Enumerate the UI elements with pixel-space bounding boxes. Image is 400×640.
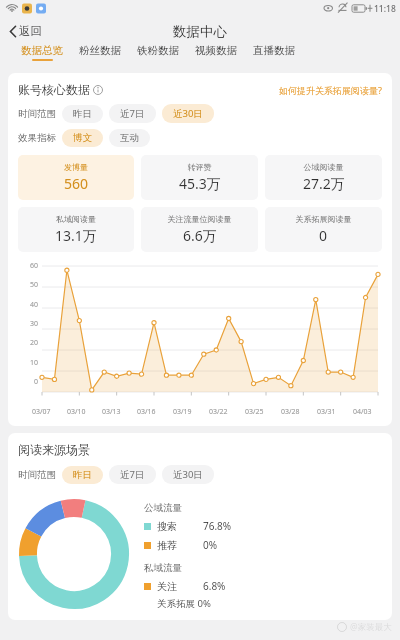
- button[interactable]: 近30日: [162, 104, 214, 123]
- staticText: 03/16: [137, 407, 156, 417]
- button[interactable]: 关系拓展阅读量: [265, 207, 382, 252]
- button[interactable]: 粉丝数据: [74, 44, 126, 59]
- staticText: 近30日: [173, 107, 203, 120]
- staticText: 27.2万: [303, 174, 345, 193]
- staticText: 私域流量: [144, 562, 182, 574]
- staticText: 视频数据: [195, 44, 237, 57]
- button[interactable]: 说明: [93, 85, 103, 95]
- button[interactable]: 博文: [62, 129, 103, 147]
- staticText: 30: [30, 319, 39, 329]
- staticText: 数据中心: [173, 23, 227, 40]
- staticText: 近7日: [120, 468, 145, 481]
- button[interactable]: 公域阅读量: [265, 155, 382, 200]
- staticText: 直播数据: [253, 44, 295, 57]
- staticText: 昨日: [73, 108, 92, 120]
- staticText: 关系拓展 0%: [157, 597, 211, 610]
- staticText: 0%: [203, 538, 218, 552]
- button[interactable]: 互动: [109, 129, 150, 147]
- staticText: 03/19: [173, 407, 192, 417]
- button[interactable]: 关注流量位阅读量: [141, 207, 258, 252]
- staticText: 10: [30, 358, 39, 368]
- staticText: 03/13: [102, 407, 121, 417]
- staticText: 时间范围: [18, 469, 56, 481]
- button[interactable]: 转评赞: [141, 155, 258, 200]
- staticText: @家装最大: [350, 621, 392, 633]
- staticText: 13.1万: [55, 226, 97, 245]
- staticText: 公域流量: [144, 502, 182, 514]
- button[interactable]: 近30日: [162, 465, 214, 484]
- staticText: 转评赞: [143, 162, 256, 172]
- button[interactable]: 近7日: [109, 465, 156, 484]
- staticText: 昨日: [73, 469, 92, 481]
- staticText: 互动: [120, 132, 139, 144]
- button[interactable]: 数据总览: [16, 44, 68, 61]
- staticText: 返回: [19, 24, 42, 38]
- button[interactable]: 昨日: [62, 105, 103, 123]
- staticText: 粉丝数据: [79, 44, 121, 57]
- staticText: 03/22: [209, 407, 228, 417]
- staticText: 03/31: [317, 407, 336, 417]
- staticText: 03/10: [67, 407, 86, 417]
- staticText: 关注流量位阅读量: [143, 214, 256, 224]
- staticText: 560: [64, 174, 89, 193]
- staticText: 私域阅读量: [20, 214, 132, 224]
- staticText: 公域阅读量: [267, 162, 380, 172]
- staticText: 03/28: [281, 407, 300, 417]
- button[interactable]: 直播数据: [248, 44, 300, 59]
- staticText: 近7日: [120, 107, 145, 120]
- staticText: 效果指标: [18, 132, 56, 144]
- staticText: 关系拓展阅读量: [267, 214, 380, 224]
- staticText: 铁粉数据: [137, 44, 179, 57]
- staticText: 11:18: [374, 3, 396, 15]
- staticText: 时间范围: [18, 108, 56, 120]
- button[interactable]: 如何提升关系拓展阅读量?: [279, 84, 382, 96]
- staticText: 博文: [73, 132, 92, 144]
- staticText: 近30日: [173, 468, 203, 481]
- staticText: 40: [30, 300, 39, 310]
- staticText: 04/03: [353, 407, 372, 417]
- button[interactable]: 私域阅读量: [18, 207, 134, 252]
- staticText: 6.6万: [183, 226, 217, 245]
- staticText: 发博量: [20, 162, 132, 172]
- staticText: 0: [319, 226, 328, 245]
- staticText: 关注: [157, 580, 177, 593]
- staticText: 20: [30, 338, 39, 348]
- staticText: 76.8%: [203, 519, 232, 533]
- staticText: 50: [30, 280, 39, 290]
- staticText: 6.8%: [203, 579, 226, 593]
- button[interactable]: 近7日: [109, 104, 156, 123]
- staticText: 推荐: [157, 539, 177, 552]
- button[interactable]: 视频数据: [190, 44, 242, 59]
- staticText: 搜索: [157, 520, 177, 533]
- button[interactable]: 昨日: [62, 466, 103, 484]
- staticText: 数据总览: [21, 44, 63, 57]
- staticText: 0: [34, 377, 39, 387]
- staticText: 60: [30, 261, 39, 271]
- staticText: 03/07: [32, 407, 51, 417]
- button[interactable]: 发博量: [18, 155, 134, 200]
- staticText: 45.3万: [179, 174, 221, 193]
- button[interactable]: 返回: [5, 21, 46, 41]
- staticText: 账号核心数据: [18, 82, 90, 97]
- staticText: 03/25: [245, 407, 264, 417]
- staticText: 阅读来源场景: [18, 442, 90, 457]
- button[interactable]: 铁粉数据: [132, 44, 184, 59]
